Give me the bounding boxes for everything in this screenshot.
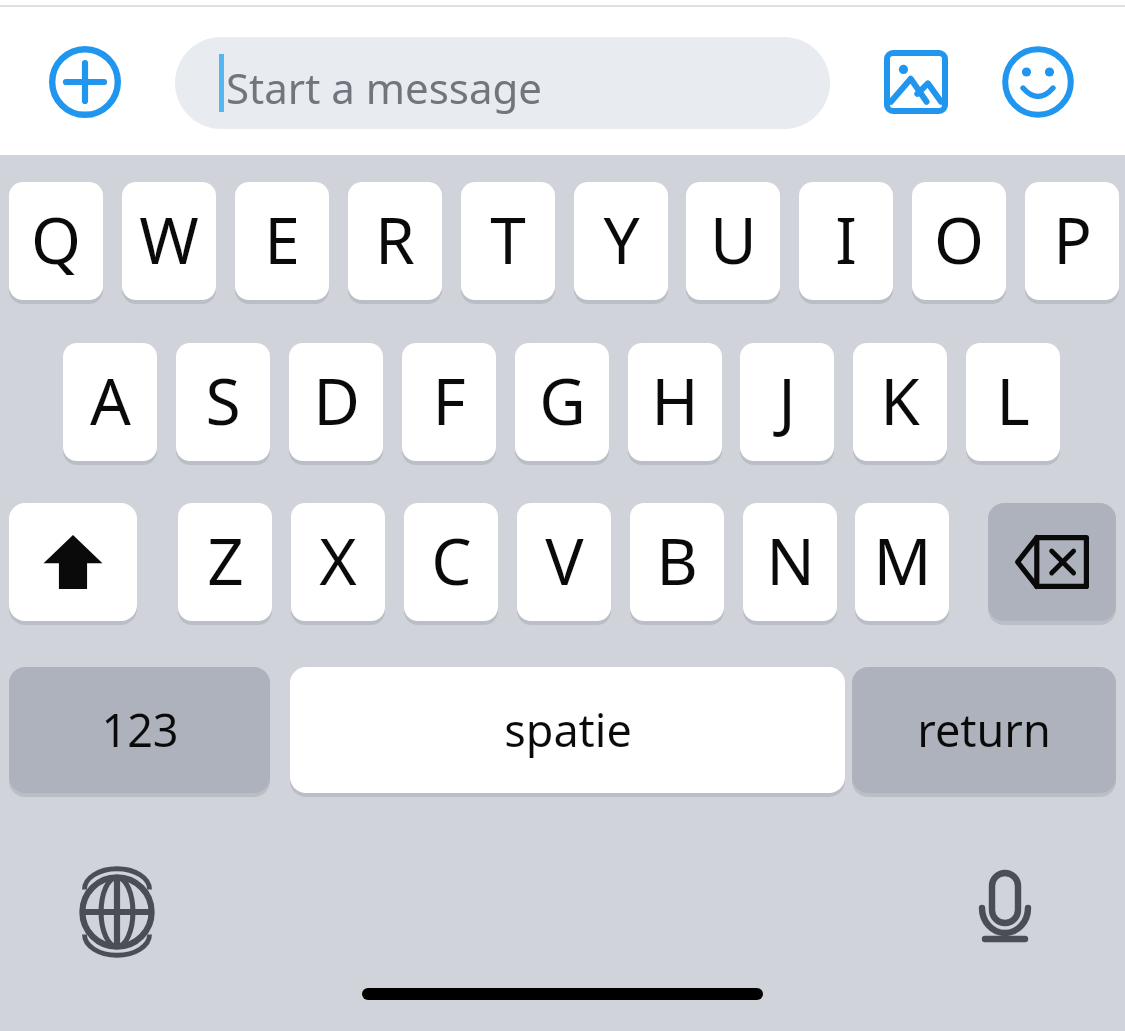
button[interactable]: H [628,343,722,461]
button[interactable]: Z [178,503,272,621]
button[interactable]: Add attachment [48,45,122,119]
staticText: spatie [504,699,632,760]
staticText: T [490,196,526,283]
staticText: I [835,196,857,283]
staticText: L [996,357,1030,444]
button[interactable]: F [402,343,496,461]
button[interactable]: 123 [9,667,270,793]
staticText: D [313,357,360,444]
staticText: H [651,357,699,444]
staticText: S [205,357,241,444]
button[interactable]: Dictate [963,865,1047,949]
button[interactable]: W [122,182,216,300]
staticText: O [934,196,984,283]
button[interactable]: spatie [290,667,845,793]
staticText: 123 [101,699,179,760]
button[interactable]: L [966,343,1060,461]
staticText: C [431,517,472,604]
staticText: B [656,517,698,604]
staticText: K [880,357,920,444]
button[interactable]: V [517,503,611,621]
button[interactable]: P [1025,182,1119,300]
button[interactable]: O [912,182,1006,300]
button[interactable]: K [853,343,947,461]
button[interactable]: E [235,182,329,300]
button[interactable]: C [404,503,498,621]
button[interactable]: Q [9,182,103,300]
button[interactable]: X [291,503,385,621]
button[interactable]: B [630,503,724,621]
button[interactable]: Send photo [880,46,952,118]
button[interactable]: G [515,343,609,461]
staticText: N [766,517,815,604]
button[interactable]: Switch keyboard language [72,867,162,957]
staticText: M [873,517,932,604]
staticText: W [139,196,199,283]
button[interactable]: Shift [9,503,137,621]
staticText: P [1053,196,1092,283]
staticText: Z [207,517,244,604]
button[interactable]: Emoji [1001,45,1075,119]
button[interactable]: Start a message [175,37,830,129]
staticText: A [90,357,131,444]
staticText: X [319,517,357,604]
staticText: Y [603,196,640,283]
staticText: U [710,196,757,283]
staticText: V [545,517,584,604]
button[interactable]: S [176,343,270,461]
button[interactable]: Backspace [988,503,1116,621]
staticText: return [917,699,1051,760]
staticText: E [264,196,300,283]
staticText: Start a message [226,59,542,116]
staticText: R [375,196,415,283]
button[interactable]: M [855,503,949,621]
button[interactable]: I [799,182,893,300]
button[interactable]: return [852,667,1116,793]
staticText: G [539,357,586,444]
button[interactable]: U [686,182,780,300]
button[interactable]: N [743,503,837,621]
staticText: Q [31,196,81,283]
button[interactable]: D [289,343,383,461]
staticText: J [778,357,796,444]
button[interactable]: Y [574,182,668,300]
button[interactable]: A [63,343,157,461]
button[interactable]: R [348,182,442,300]
button[interactable]: T [461,182,555,300]
button[interactable]: J [740,343,834,461]
staticText: F [432,357,466,444]
